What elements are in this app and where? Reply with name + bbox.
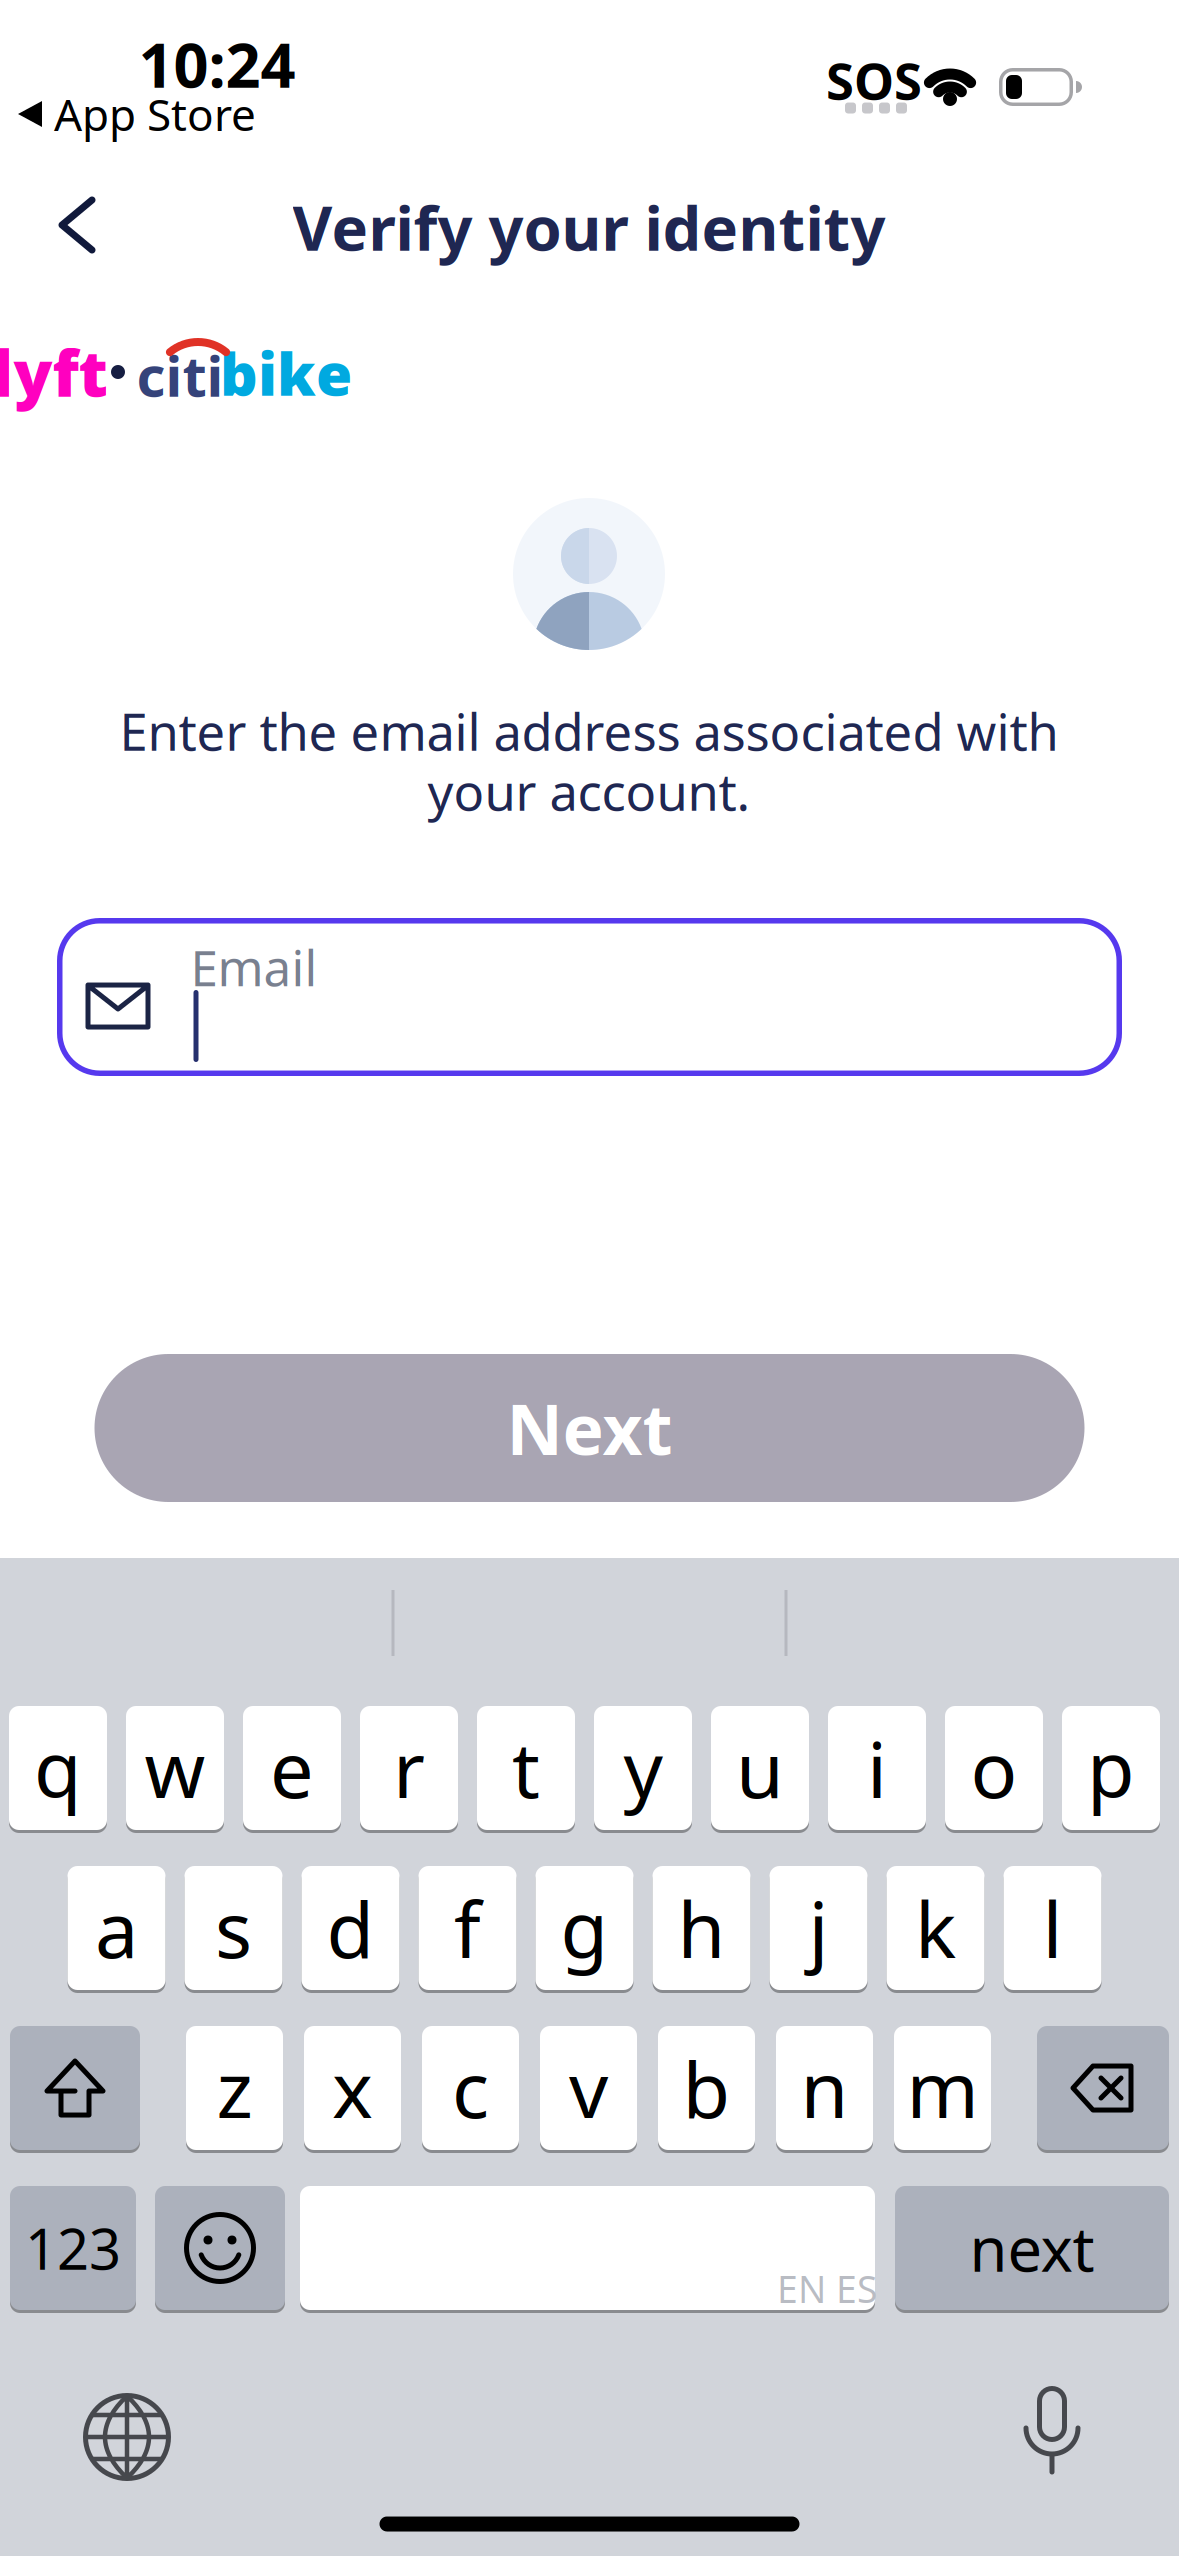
button[interactable]: Dictation (1024, 2384, 1080, 2476)
staticText: k (915, 1877, 956, 1979)
button[interactable]: w (126, 1704, 224, 1831)
staticText: l (1042, 1877, 1062, 1979)
staticText: EN ES (777, 2264, 877, 2313)
button[interactable]: i (828, 1704, 926, 1831)
staticText: App Store (54, 85, 256, 143)
staticText: g (560, 1877, 608, 1979)
staticText: f (454, 1877, 481, 1979)
staticText: a (95, 1877, 138, 1979)
staticText: m (906, 2037, 978, 2139)
button[interactable]: b (658, 2024, 755, 2151)
button[interactable]: Emoji (155, 2184, 285, 2311)
staticText: e (270, 1717, 314, 1819)
button[interactable]: n (776, 2024, 873, 2151)
button[interactable]: z (186, 2024, 283, 2151)
button[interactable]: Back (58, 197, 96, 253)
staticText: q (34, 1717, 82, 1819)
staticText: r (393, 1717, 425, 1819)
button[interactable]: t (477, 1704, 575, 1831)
button[interactable]: u (711, 1704, 809, 1831)
button[interactable]: f (418, 1864, 516, 1991)
button[interactable]: r (360, 1704, 458, 1831)
button[interactable]: Shift (10, 2024, 140, 2151)
staticText: SOS (826, 46, 922, 114)
staticText: next (969, 2207, 1094, 2289)
staticText: v (569, 2037, 608, 2139)
staticText: b (682, 2037, 730, 2139)
staticText: Email (190, 934, 317, 1000)
staticText: y (623, 1717, 662, 1819)
button[interactable]: s (184, 1864, 282, 1991)
staticText: 123 (25, 2211, 121, 2285)
button[interactable]: next (895, 2184, 1169, 2311)
staticText: citi (136, 338, 223, 412)
button[interactable]: Delete (1037, 2024, 1169, 2151)
button[interactable]: p (1062, 1704, 1160, 1831)
staticText: h (677, 1877, 725, 1979)
button[interactable]: y (594, 1704, 692, 1831)
staticText: Verify your identity (292, 186, 885, 268)
button[interactable]: c (422, 2024, 519, 2151)
button[interactable]: m (894, 2024, 991, 2151)
staticText: s (215, 1877, 252, 1979)
button[interactable]: o (945, 1704, 1043, 1831)
button[interactable]: g (535, 1864, 633, 1991)
staticText: bike (220, 334, 352, 412)
button[interactable]: l (1003, 1864, 1101, 1991)
staticText: u (736, 1717, 784, 1819)
button[interactable]: j (769, 1864, 867, 1991)
button[interactable]: 123 (10, 2184, 136, 2311)
staticText: your account. (427, 757, 750, 825)
staticText: Enter the email address associated with (119, 697, 1058, 765)
staticText: c (452, 2037, 489, 2139)
staticText: o (970, 1717, 1017, 1819)
button[interactable]: h (652, 1864, 750, 1991)
button[interactable]: Back to App Store (18, 85, 256, 143)
button[interactable]: space (300, 2184, 875, 2311)
staticText: lyft (0, 329, 107, 414)
button[interactable]: x (304, 2024, 401, 2151)
button[interactable]: Email (57, 918, 1122, 1076)
button[interactable]: k (886, 1864, 984, 1991)
staticText: n (800, 2037, 848, 2139)
button[interactable]: a (67, 1864, 165, 1991)
staticText: 10:24 (138, 23, 295, 105)
button[interactable]: v (540, 2024, 637, 2151)
staticText: Next (506, 1382, 672, 1474)
staticText: j (808, 1877, 828, 1979)
staticText: i (867, 1717, 887, 1819)
button[interactable]: Next keyboard (79, 2389, 175, 2485)
staticText: w (144, 1717, 205, 1819)
button[interactable]: d (301, 1864, 399, 1991)
button[interactable]: Next (94, 1354, 1084, 1502)
button[interactable]: e (243, 1704, 341, 1831)
staticText: d (326, 1877, 374, 1979)
staticText: x (332, 2037, 373, 2139)
button[interactable]: q (9, 1704, 107, 1831)
staticText: t (512, 1717, 540, 1819)
staticText: p (1087, 1717, 1135, 1819)
staticText: z (216, 2037, 252, 2139)
